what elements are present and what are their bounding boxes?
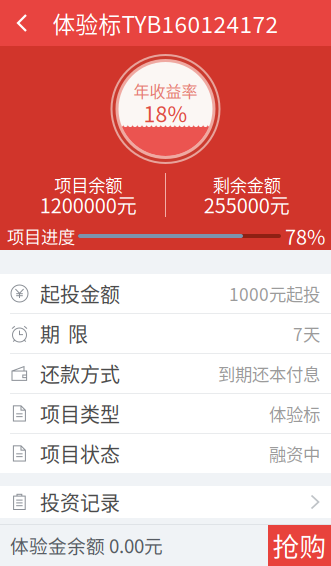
staticText: 7天: [293, 321, 320, 346]
staticText: 项目进度: [7, 223, 75, 249]
button[interactable]: Back: [0, 0, 44, 46]
staticText: 起投金额: [40, 279, 120, 308]
staticText: 体验标: [269, 401, 320, 426]
staticText: 1200000元: [40, 190, 137, 219]
staticText: 投资记录: [40, 487, 120, 516]
staticText: 18%: [143, 98, 187, 128]
staticText: 到期还本付息: [218, 361, 320, 386]
staticText: 项目余额: [54, 172, 122, 197]
button[interactable]: 抢购: [268, 524, 331, 566]
staticText: 体验金余额 0.00元: [10, 531, 163, 558]
staticText: 还款方式: [40, 359, 120, 388]
staticText: 1000元起投: [229, 281, 320, 306]
staticText: 体验标TYB160124172: [52, 7, 278, 39]
staticText: 剩余金额: [213, 172, 281, 197]
staticText: 78%: [285, 221, 325, 250]
staticText: 融资中: [269, 441, 320, 466]
staticText: 项目类型: [40, 399, 120, 428]
staticText: 项目状态: [40, 439, 120, 468]
staticText: 期 限: [40, 319, 88, 348]
staticText: 抢购: [272, 526, 326, 564]
staticText: 年收益率: [133, 79, 197, 102]
staticText: 255000元: [204, 190, 290, 219]
button[interactable]: 投资记录: [0, 486, 331, 518]
